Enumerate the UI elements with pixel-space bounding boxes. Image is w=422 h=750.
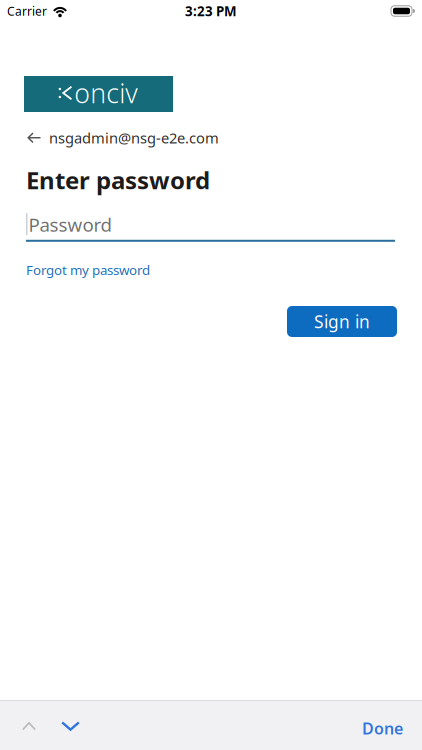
- button[interactable]: Previous field: [18, 717, 40, 739]
- button[interactable]: Password: [26, 212, 395, 242]
- staticText: Forgot my password: [26, 261, 150, 279]
- staticText: Done: [362, 718, 403, 739]
- button[interactable]: nsgadmin@nsg-e2e.com: [27, 128, 219, 147]
- button[interactable]: Done: [362, 718, 403, 739]
- button[interactable]: Next field: [57, 717, 84, 740]
- staticText: 3:23 PM: [185, 2, 237, 20]
- button[interactable]: Sign in: [287, 306, 397, 337]
- staticText: nsgadmin@nsg-e2e.com: [49, 128, 219, 147]
- staticText: Carrier: [7, 3, 47, 19]
- staticText: Password: [28, 212, 111, 237]
- staticText: onciv: [74, 75, 138, 111]
- staticText: Sign in: [314, 310, 370, 333]
- staticText: Enter password: [26, 164, 210, 196]
- button[interactable]: Forgot my password: [26, 261, 150, 279]
